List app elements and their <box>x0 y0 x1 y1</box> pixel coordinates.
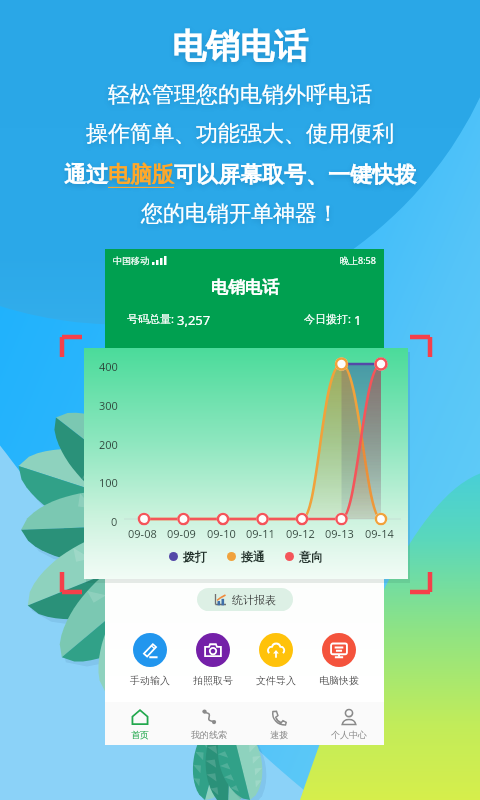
button[interactable]: 个人中心 <box>314 702 384 745</box>
staticText: 意向 <box>299 549 323 564</box>
staticText: 09-14 <box>365 526 394 541</box>
staticText: 3,257 <box>177 311 211 329</box>
staticText: 今日拨打: <box>304 311 354 326</box>
button[interactable]: 首页 <box>105 702 174 745</box>
staticText: 晚上8:58 <box>340 254 376 266</box>
button[interactable]: 文件导入 <box>252 633 300 687</box>
staticText: 09-09 <box>167 526 196 541</box>
staticText: 拍照取号 <box>193 674 233 687</box>
staticText: 09-12 <box>286 526 315 541</box>
staticText: 09-08 <box>128 526 157 541</box>
staticText: 09-10 <box>207 526 236 541</box>
staticText: 电销电话 <box>172 25 308 68</box>
staticText: 中国移动 <box>113 255 149 266</box>
button[interactable]: 拍照取号 <box>189 633 237 687</box>
button[interactable]: 统计报表 <box>197 588 293 611</box>
staticText: 09-13 <box>325 526 354 541</box>
button[interactable]: 电脑快拨 <box>315 633 363 687</box>
staticText: 手动输入 <box>130 674 170 687</box>
staticText: 号码总量: <box>127 311 177 326</box>
staticText: 09-11 <box>246 526 275 541</box>
staticText: 可以屏幕取号、一键快拨 <box>174 161 416 189</box>
staticText: 您的电销开单神器！ <box>141 200 339 228</box>
staticText: 电销电话 <box>211 277 279 298</box>
staticText: 电脑快拨 <box>319 674 359 687</box>
button[interactable]: 手动输入 <box>126 633 174 687</box>
staticText: 300 <box>99 398 118 413</box>
staticText: 拨打 <box>183 549 207 564</box>
button[interactable]: 我的线索 <box>174 702 244 745</box>
staticText: 200 <box>99 437 118 452</box>
staticText: 400 <box>99 359 118 374</box>
button[interactable]: 速拨 <box>244 702 314 745</box>
staticText: 速拨 <box>270 729 288 740</box>
staticText: 我的线索 <box>191 729 227 740</box>
staticText: 通过 <box>64 161 108 189</box>
staticText: 文件导入 <box>256 674 296 687</box>
staticText: 统计报表 <box>232 593 276 607</box>
staticText: 100 <box>99 475 118 490</box>
staticText: 0 <box>111 514 118 529</box>
staticText: 首页 <box>131 729 149 740</box>
staticText: 1 <box>354 311 362 329</box>
staticText: 个人中心 <box>331 729 367 740</box>
staticText: 操作简单、功能强大、使用便利 <box>86 120 394 148</box>
staticText: 轻松管理您的电销外呼电话 <box>108 81 372 109</box>
staticText: 接通 <box>241 549 265 564</box>
staticText: 电脑版 <box>108 161 174 189</box>
